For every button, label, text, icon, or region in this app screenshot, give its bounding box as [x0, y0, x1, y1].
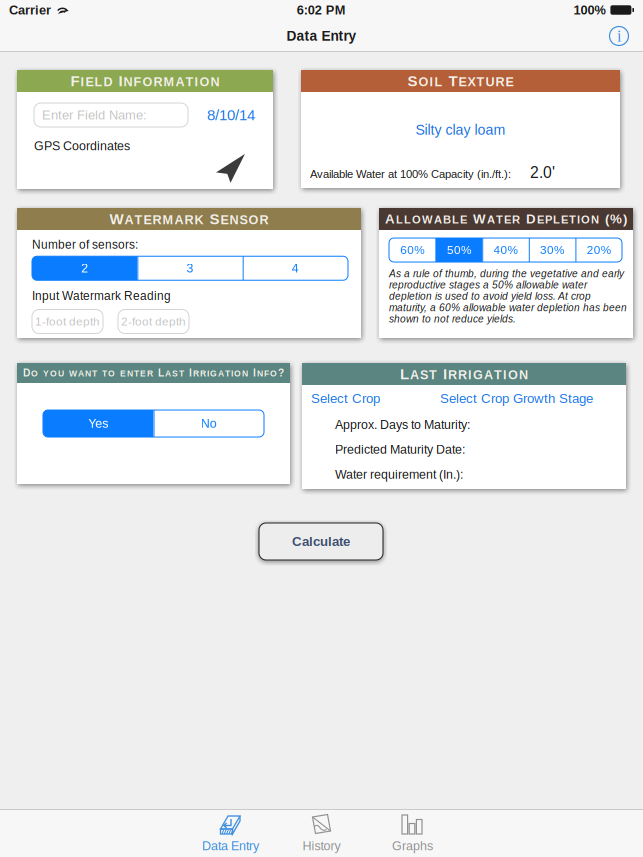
staticText: 2.0': [530, 164, 555, 181]
staticText: Predicted Maturity Date:: [335, 443, 465, 456]
staticText: 6:02 PM: [297, 3, 346, 17]
button[interactable]: No: [153, 410, 264, 437]
button[interactable]: 1-foot depth: [32, 309, 103, 333]
button[interactable]: History: [276, 809, 367, 857]
staticText: Data Entry: [286, 28, 356, 44]
button[interactable]: 20%: [575, 238, 622, 262]
button[interactable]: Data Entry: [185, 809, 276, 857]
staticText: History: [302, 839, 340, 853]
button[interactable]: 3: [137, 256, 243, 280]
staticText: Data Entry: [202, 839, 259, 853]
staticText: A L L O W A B L E W A T E R D E P L E T …: [385, 212, 627, 226]
staticText: As a rule of thumb, during the vegetativ…: [389, 268, 627, 325]
staticText: 50%: [447, 243, 471, 256]
staticText: 1-foot depth: [35, 315, 100, 328]
button[interactable]: Calculate: [259, 523, 383, 560]
staticText: No: [201, 416, 217, 430]
button[interactable]: Select Crop: [311, 391, 380, 406]
button[interactable]: 4: [243, 256, 348, 280]
staticText: L A S T I R R I G A T I O N: [400, 366, 528, 382]
staticText: Calculate: [292, 534, 350, 549]
staticText: 8/10/14: [207, 107, 255, 123]
button[interactable]: 2: [32, 256, 137, 280]
staticText: 4: [292, 261, 299, 275]
staticText: Graphs: [392, 839, 433, 853]
button[interactable]: Select Crop Growth Stage: [440, 391, 593, 406]
staticText: W A T E R M A R K S E N S O R: [109, 211, 268, 227]
button[interactable]: Graphs: [367, 809, 458, 857]
staticText: Available Water at 100% Capacity (in./ft…: [310, 168, 511, 180]
staticText: D O Y O U W A N T T O E N T E R L A S T …: [23, 367, 284, 378]
button[interactable]: 30%: [529, 238, 575, 262]
staticText: Select Crop: [311, 391, 380, 406]
staticText: Enter Field Name:: [42, 108, 147, 122]
staticText: S O I L T E X T U R E: [407, 73, 513, 89]
button[interactable]: Silty clay loam: [301, 122, 620, 138]
staticText: 2-foot depth: [121, 315, 186, 328]
button[interactable]: 50%: [436, 238, 482, 262]
staticText: Silty clay loam: [415, 122, 505, 138]
staticText: Water requirement (In.):: [335, 467, 463, 481]
staticText: 20%: [587, 243, 611, 256]
button[interactable]: 40%: [482, 238, 529, 262]
staticText: 100%: [573, 3, 605, 17]
button[interactable]: 60%: [389, 238, 436, 262]
staticText: Carrier: [9, 3, 51, 17]
staticText: 2: [81, 261, 88, 275]
button[interactable]: Enter Field Name:: [34, 103, 188, 127]
staticText: F I E L D I N F O R M A T I O N: [70, 73, 219, 89]
staticText: i: [617, 27, 621, 45]
button[interactable]: Information: [602, 20, 636, 52]
staticText: 60%: [400, 243, 424, 256]
staticText: Number of sensors:: [32, 238, 138, 251]
button[interactable]: Yes: [43, 410, 153, 437]
staticText: GPS Coordinates: [34, 139, 130, 153]
staticText: Input Watermark Reading: [32, 289, 171, 303]
staticText: Select Crop Growth Stage: [440, 391, 593, 406]
staticText: Yes: [88, 416, 108, 430]
staticText: 3: [186, 261, 193, 275]
staticText: Approx. Days to Maturity:: [335, 418, 470, 432]
staticText: 40%: [493, 243, 517, 256]
staticText: 30%: [540, 243, 564, 256]
button[interactable]: 2-foot depth: [118, 309, 189, 333]
